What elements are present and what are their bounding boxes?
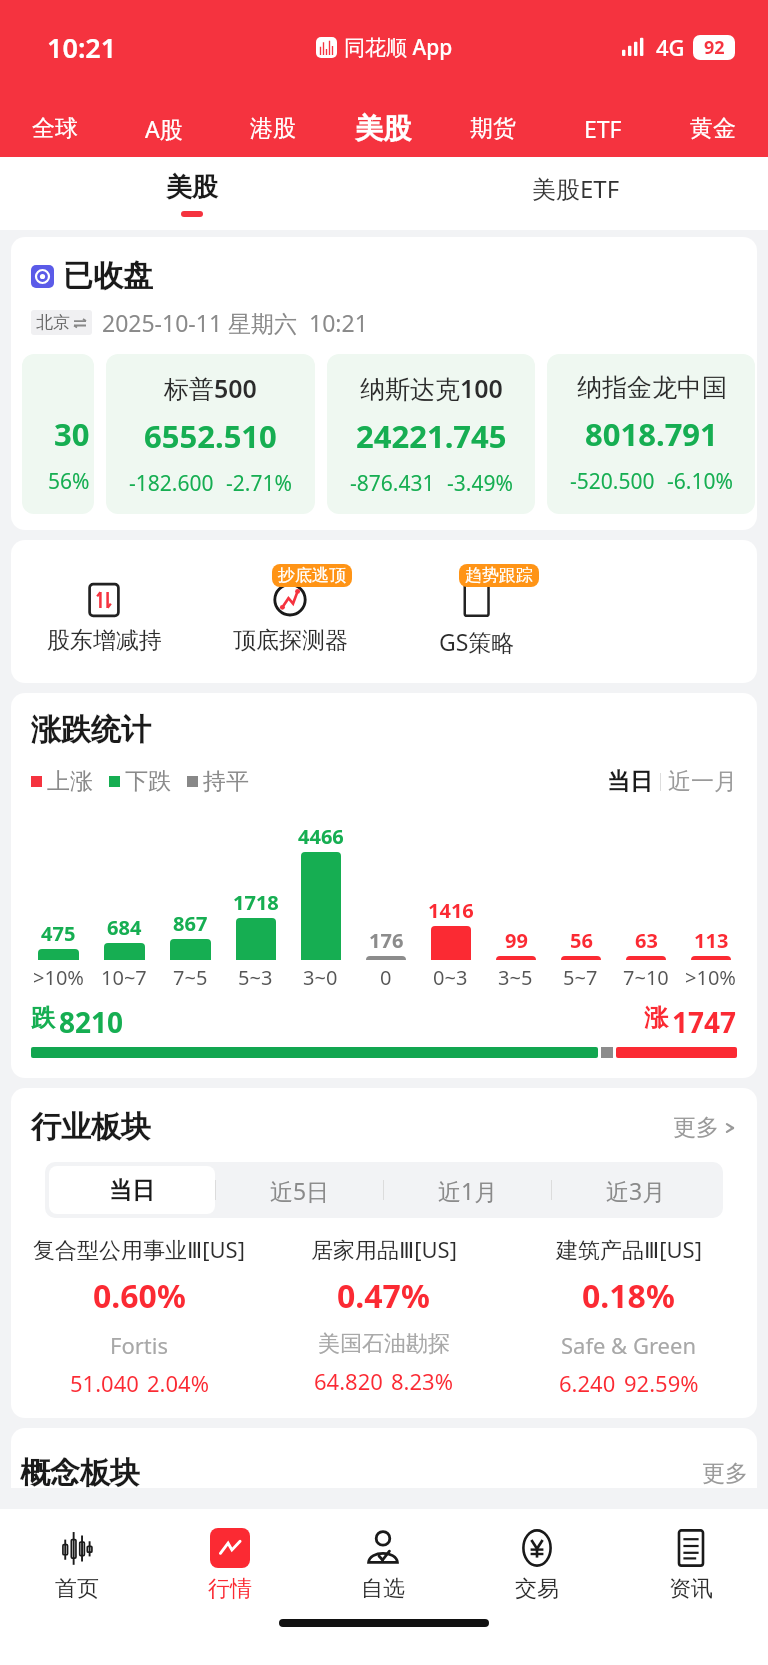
button[interactable]: 股东增减持: [11, 566, 197, 655]
staticText: 近5日: [270, 1175, 330, 1206]
staticText: 已收盘: [63, 257, 153, 295]
button[interactable]: 30: [22, 354, 94, 514]
staticText: 475: [41, 920, 76, 947]
staticText: 63: [635, 927, 658, 954]
button[interactable]: 近3月: [552, 1166, 719, 1214]
staticText: 6.240: [559, 1368, 616, 1398]
staticText: 抄底逃顶: [278, 565, 346, 586]
staticText: 30: [54, 413, 90, 455]
button[interactable]: 北京: [36, 312, 87, 333]
button[interactable]: 资讯: [614, 1509, 768, 1619]
staticText: 美股: [355, 111, 411, 146]
button[interactable]: 684: [91, 810, 157, 991]
staticText: 7~10: [623, 964, 669, 991]
staticText: 64.820: [314, 1366, 383, 1396]
staticText: 8018.791: [585, 413, 718, 455]
button[interactable]: 56: [548, 810, 613, 991]
button[interactable]: 交易: [460, 1509, 614, 1619]
staticText: 近1月: [438, 1175, 498, 1206]
button[interactable]: 美股: [0, 157, 384, 230]
staticText: 交易: [515, 1575, 559, 1603]
staticText: 全球: [32, 114, 78, 143]
button[interactable]: 176: [353, 810, 418, 991]
button[interactable]: 复合型公用事业Ⅲ[US]: [17, 1234, 261, 1398]
staticText: 标普500: [164, 371, 257, 405]
staticText: 黄金: [690, 114, 736, 143]
button[interactable]: A股: [109, 100, 218, 157]
button[interactable]: 首页: [0, 1509, 153, 1619]
staticText: >10%: [33, 964, 84, 991]
button[interactable]: 867: [157, 810, 223, 991]
button[interactable]: 近5日: [216, 1166, 383, 1214]
staticText: 8210: [59, 1003, 124, 1041]
button[interactable]: 建筑产品Ⅲ[US]: [506, 1234, 751, 1398]
button[interactable]: 4466: [288, 810, 353, 991]
button[interactable]: 113: [678, 810, 743, 991]
button[interactable]: 当日: [49, 1166, 215, 1214]
button[interactable]: 1718: [223, 810, 288, 991]
button[interactable]: 抄底逃顶: [197, 566, 383, 655]
staticText: 684: [107, 914, 142, 941]
staticText: 首页: [55, 1575, 99, 1603]
button[interactable]: 港股: [218, 100, 328, 157]
staticText: A股: [145, 113, 183, 144]
button[interactable]: 纳指金龙中国: [547, 354, 755, 514]
button[interactable]: 近一月: [668, 767, 737, 796]
button[interactable]: 63: [613, 810, 678, 991]
button[interactable]: 475: [25, 810, 91, 991]
button[interactable]: 美股ETF: [384, 157, 768, 230]
button[interactable]: 更多: [673, 1113, 737, 1142]
button[interactable]: 近1月: [384, 1166, 551, 1214]
staticText: 4G: [656, 32, 685, 62]
button[interactable]: 期货: [438, 100, 548, 157]
staticText: 当日: [607, 767, 653, 796]
staticText: 纳指金龙中国: [577, 372, 727, 403]
button[interactable]: 纳斯达克100: [327, 354, 535, 514]
staticText: 1416: [428, 897, 474, 924]
staticText: 0.47%: [337, 1274, 430, 1318]
button[interactable]: 1416: [418, 810, 483, 991]
staticText: 居家用品Ⅲ[US]: [311, 1234, 457, 1264]
staticText: 4466: [298, 823, 344, 850]
staticText: 当日: [109, 1176, 155, 1205]
staticText: 涨跌统计: [31, 711, 151, 749]
staticText: 51.040: [70, 1368, 139, 1398]
staticText: 2025-10-11 星期六 10:21: [102, 307, 368, 338]
staticText: 8.23%: [391, 1366, 453, 1396]
staticText: 0~3: [433, 964, 468, 991]
button[interactable]: 居家用品Ⅲ[US]: [261, 1234, 506, 1396]
button[interactable]: 自选: [306, 1509, 460, 1619]
staticText: 期货: [470, 114, 516, 143]
staticText: -182.600: [129, 469, 214, 498]
button[interactable]: ETF: [548, 100, 658, 157]
staticText: 建筑产品Ⅲ[US]: [556, 1234, 702, 1264]
staticText: 行业板块: [31, 1108, 151, 1146]
button[interactable]: 标普500: [106, 354, 315, 514]
staticText: -876.431: [350, 469, 435, 498]
button[interactable]: 99: [483, 810, 548, 991]
staticText: -3.49%: [447, 469, 513, 498]
button[interactable]: 行情: [153, 1509, 306, 1619]
button[interactable]: 趋势跟踪: [383, 566, 570, 657]
staticText: 0.60%: [93, 1274, 186, 1318]
staticText: 5~7: [563, 964, 598, 991]
staticText: 美国石油勘探: [318, 1330, 450, 1358]
staticText: 0.18%: [582, 1274, 675, 1318]
button[interactable]: 美股: [328, 100, 438, 157]
staticText: 867: [173, 910, 208, 937]
staticText: 自选: [361, 1575, 405, 1603]
staticText: -2.71%: [226, 469, 292, 498]
button[interactable]: 当日: [607, 767, 653, 796]
staticText: 10:21: [47, 29, 117, 66]
button[interactable]: 全球: [0, 100, 109, 157]
staticText: 涨: [644, 1003, 668, 1033]
staticText: 92.59%: [624, 1368, 699, 1398]
button[interactable]: 黄金: [658, 100, 768, 157]
staticText: GS策略: [439, 626, 515, 657]
staticText: Fortis: [110, 1330, 168, 1360]
staticText: 趋势跟踪: [465, 565, 533, 586]
staticText: 纳斯达克100: [360, 371, 503, 405]
staticText: 北京: [36, 312, 70, 333]
staticText: 56%: [48, 467, 90, 496]
staticText: 5~3: [238, 964, 273, 991]
